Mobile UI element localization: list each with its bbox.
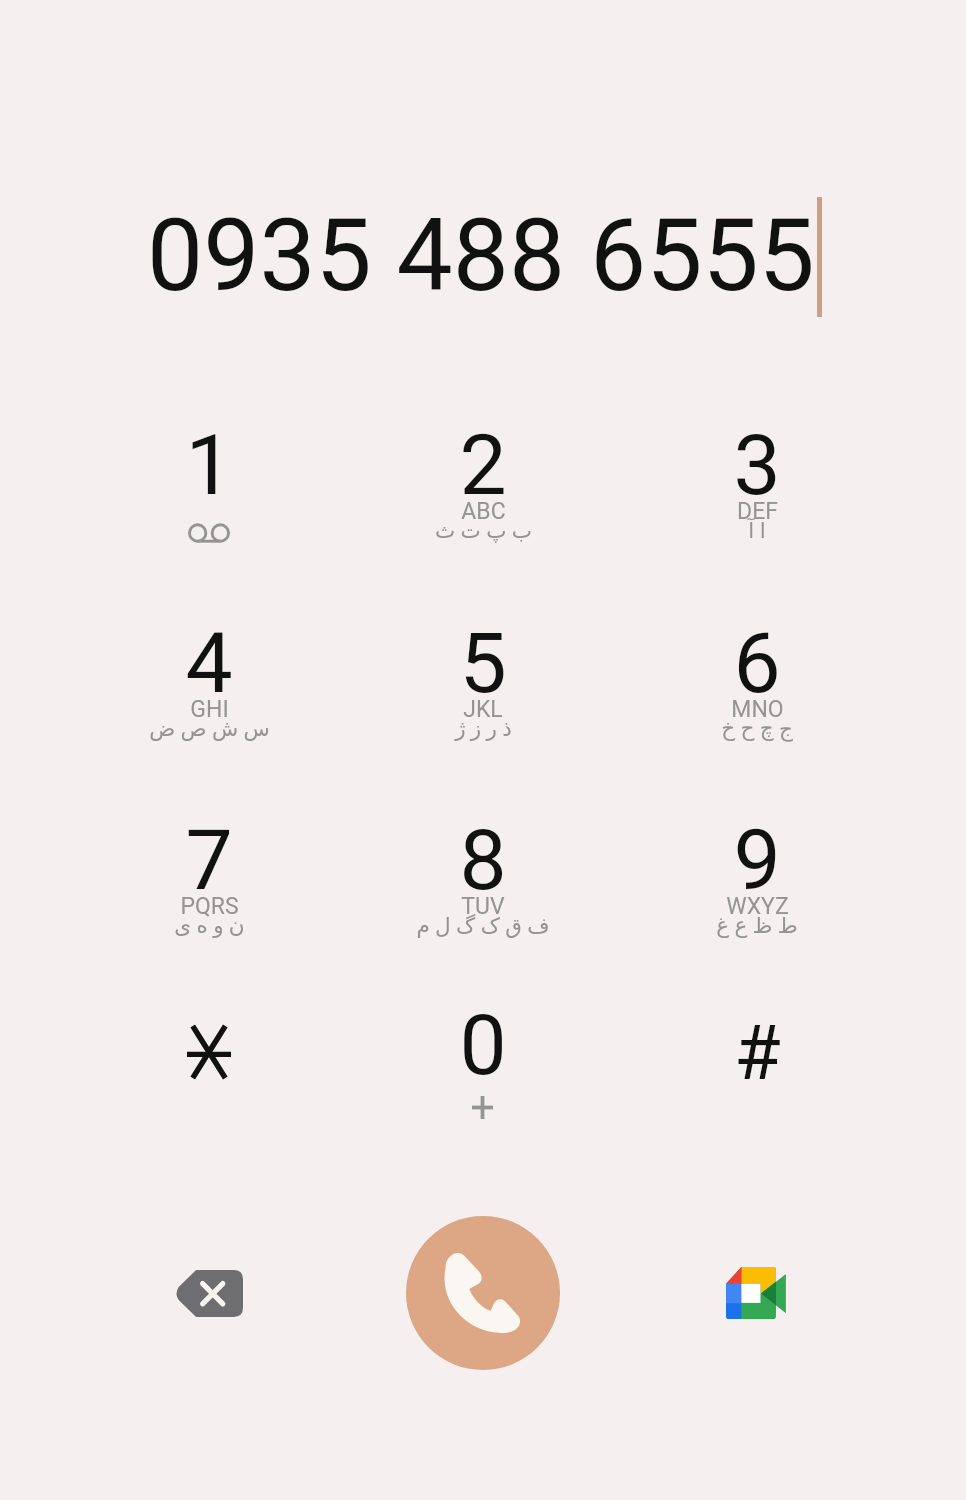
button[interactable]: 3	[620, 394, 894, 584]
button[interactable]: 8	[346, 789, 620, 979]
button[interactable]: pound	[620, 974, 894, 1164]
staticText: 3	[733, 416, 781, 514]
staticText: PQRS	[180, 893, 239, 920]
staticText: 8	[459, 811, 507, 909]
button[interactable]: Call	[406, 1216, 560, 1370]
staticText: ذ ر ز ژ	[455, 716, 512, 741]
staticText: TUV	[461, 893, 505, 920]
staticText: ج چ ح خ	[721, 716, 793, 741]
staticText: MNO	[731, 696, 784, 723]
staticText: 2	[459, 416, 507, 514]
staticText: #	[734, 1008, 781, 1097]
staticText: 6	[733, 614, 781, 712]
staticText: DEF	[737, 498, 778, 525]
button[interactable]: 5	[346, 592, 620, 782]
button[interactable]: star	[72, 974, 346, 1164]
button[interactable]: Video call	[701, 1241, 813, 1345]
staticText: 7	[185, 811, 233, 909]
staticText: JKL	[463, 696, 503, 723]
staticText: ن و ه ی	[174, 913, 245, 938]
button[interactable]: 9	[620, 789, 894, 979]
staticText: ا آ	[748, 518, 766, 543]
button[interactable]: 1	[72, 394, 346, 584]
button[interactable]: 7	[72, 789, 346, 979]
staticText: ف ق ک گ ل م	[416, 913, 550, 938]
staticText: ب پ ت ث	[435, 518, 532, 543]
staticText: 9	[733, 811, 781, 909]
staticText: 5	[459, 614, 507, 712]
staticText: WXYZ	[726, 893, 789, 920]
button[interactable]: 2	[346, 394, 620, 584]
button[interactable]: 6	[620, 592, 894, 782]
staticText: س ش ص ض	[149, 716, 270, 741]
staticText: 4	[185, 614, 233, 712]
button[interactable]: 4	[72, 592, 346, 782]
staticText: 0935 488 6555	[147, 197, 815, 314]
button[interactable]: Backspace	[153, 1241, 265, 1345]
button[interactable]: 0	[346, 974, 620, 1164]
staticText: 1	[185, 416, 233, 514]
staticText: ABC	[461, 498, 506, 525]
staticText: ط ظ ع غ	[716, 913, 798, 938]
staticText: 0	[459, 996, 507, 1094]
staticText: GHI	[190, 696, 229, 723]
